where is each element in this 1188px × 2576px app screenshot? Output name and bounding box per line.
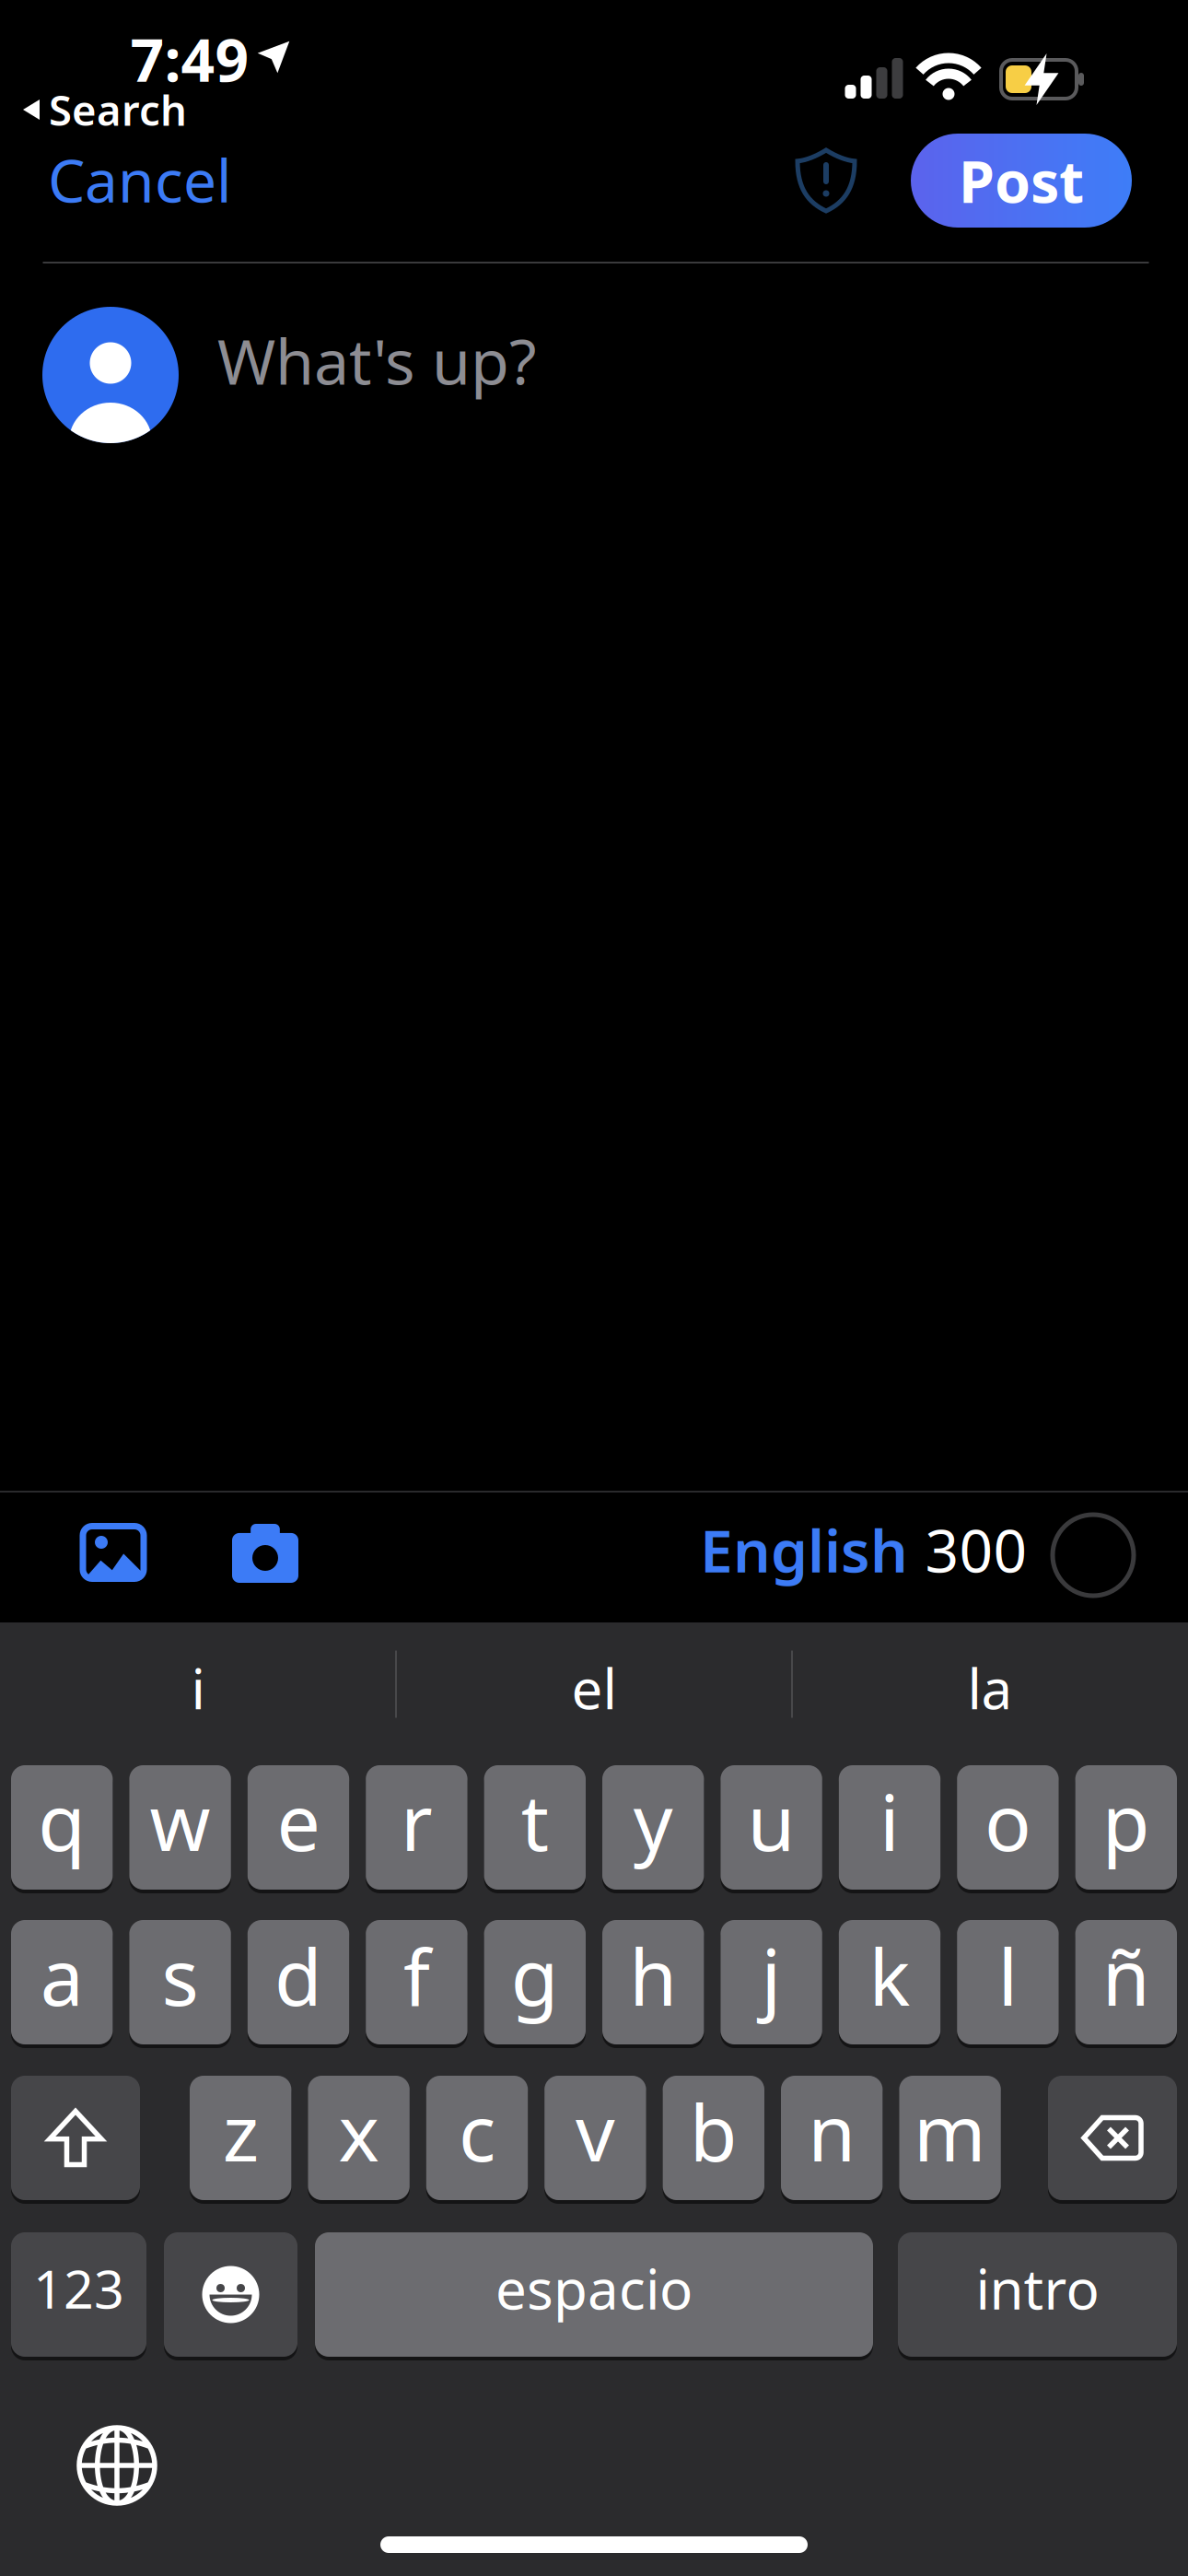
button[interactable]: k xyxy=(839,1920,940,2044)
staticText: k xyxy=(869,1924,910,2027)
staticText: d xyxy=(274,1924,322,2027)
staticText: v xyxy=(575,2080,615,2183)
staticText: Cancel xyxy=(48,141,232,219)
button[interactable]: f xyxy=(366,1920,467,2044)
staticText: c xyxy=(459,2080,495,2183)
button[interactable]: Post xyxy=(911,134,1132,228)
button[interactable]: Emoji xyxy=(164,2232,297,2357)
staticText: Search xyxy=(49,82,187,137)
staticText: intro xyxy=(976,2251,1099,2325)
button[interactable]: la xyxy=(797,1646,1183,1729)
button[interactable]: English xyxy=(700,1510,908,1589)
button[interactable]: i xyxy=(839,1765,940,1890)
staticText: x xyxy=(339,2080,379,2183)
staticText: j xyxy=(761,1924,782,2027)
staticText: t xyxy=(521,1770,549,1872)
staticText: s xyxy=(162,1924,199,2027)
button[interactable]: Next keyboard xyxy=(79,2428,155,2503)
staticText: n xyxy=(808,2080,856,2183)
button[interactable]: 123 xyxy=(11,2232,146,2357)
button[interactable]: x xyxy=(308,2076,410,2200)
button[interactable]: l xyxy=(957,1920,1059,2044)
button[interactable]: intro xyxy=(898,2232,1177,2357)
button[interactable]: c xyxy=(426,2076,528,2200)
button[interactable]: y xyxy=(602,1765,704,1890)
staticText: o xyxy=(984,1770,1031,1872)
staticText: y xyxy=(633,1770,673,1872)
button[interactable]: e xyxy=(248,1765,349,1890)
staticText: b xyxy=(690,2080,737,2183)
staticText: h xyxy=(629,1924,677,2027)
staticText: What's up? xyxy=(217,319,537,402)
staticText: English xyxy=(700,1510,908,1589)
button[interactable]: o xyxy=(957,1765,1059,1890)
button[interactable]: ñ xyxy=(1075,1920,1177,2044)
staticText: l xyxy=(998,1924,1018,2027)
button[interactable]: Add photos xyxy=(79,1522,147,1583)
button[interactable]: espacio xyxy=(315,2232,873,2357)
button[interactable]: Search xyxy=(23,82,187,137)
button[interactable]: w xyxy=(129,1765,231,1890)
button[interactable]: t xyxy=(484,1765,586,1890)
button[interactable]: Cancel xyxy=(48,141,232,219)
button[interactable]: m xyxy=(899,2076,1001,2200)
staticText: u xyxy=(747,1770,795,1872)
staticText: 7:49 xyxy=(130,20,249,98)
button[interactable]: n xyxy=(781,2076,883,2200)
button[interactable]: p xyxy=(1075,1765,1177,1890)
button[interactable]: el xyxy=(401,1646,787,1729)
staticText: m xyxy=(914,2080,986,2183)
button[interactable]: i xyxy=(5,1646,391,1729)
button[interactable]: v xyxy=(544,2076,646,2200)
staticText: q xyxy=(38,1770,86,1872)
button[interactable]: g xyxy=(484,1920,586,2044)
button[interactable]: Delete xyxy=(1048,2076,1177,2200)
staticText: 300 xyxy=(925,1510,1027,1589)
button[interactable]: a xyxy=(11,1920,113,2044)
button[interactable]: Content warnings xyxy=(798,150,855,211)
staticText: espacio xyxy=(495,2251,693,2325)
button[interactable]: z xyxy=(190,2076,291,2200)
staticText: e xyxy=(277,1770,320,1872)
button[interactable]: b xyxy=(663,2076,764,2200)
staticText: a xyxy=(40,1924,84,2027)
button[interactable]: Camera xyxy=(232,1524,298,1583)
button[interactable]: j xyxy=(721,1920,822,2044)
staticText: i xyxy=(191,1651,205,1725)
staticText: z xyxy=(223,2080,259,2183)
staticText: p xyxy=(1102,1770,1150,1872)
staticText: i xyxy=(879,1770,900,1872)
button[interactable]: h xyxy=(602,1920,704,2044)
button[interactable]: d xyxy=(248,1920,349,2044)
button[interactable]: r xyxy=(366,1765,467,1890)
staticText: la xyxy=(967,1651,1013,1725)
button[interactable]: q xyxy=(11,1765,113,1890)
staticText: w xyxy=(150,1770,211,1872)
staticText: el xyxy=(571,1651,617,1725)
button[interactable]: Shift xyxy=(11,2076,140,2200)
button[interactable]: u xyxy=(721,1765,822,1890)
button[interactable]: s xyxy=(129,1920,231,2044)
staticText: f xyxy=(403,1924,430,2027)
staticText: r xyxy=(401,1770,433,1872)
staticText: ñ xyxy=(1102,1924,1150,2027)
staticText: Post xyxy=(959,142,1084,219)
staticText: g xyxy=(511,1924,559,2027)
staticText: 123 xyxy=(33,2253,124,2323)
